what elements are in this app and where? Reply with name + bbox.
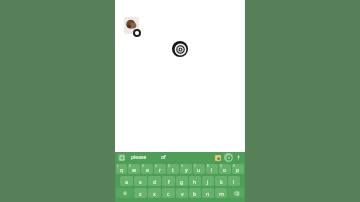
staticText: w: [132, 166, 137, 173]
button[interactable]: v: [176, 188, 188, 198]
button[interactable]: a: [120, 176, 133, 186]
staticText: g: [180, 178, 184, 185]
staticText: m: [219, 190, 224, 197]
button[interactable]: t: [167, 164, 179, 174]
button[interactable]: q: [116, 164, 127, 174]
button[interactable]: Gboard tools: [118, 154, 125, 161]
staticText: 0: [233, 164, 235, 168]
button[interactable]: w: [128, 164, 140, 174]
staticText: y: [185, 166, 188, 173]
button[interactable]: Add attachment: [120, 185, 133, 198]
staticText: 2: [129, 164, 131, 168]
button[interactable]: g: [176, 176, 188, 186]
staticText: of: [161, 154, 166, 161]
button[interactable]: Send: [227, 185, 240, 198]
button[interactable]: z: [134, 188, 147, 198]
button[interactable]: Suggest fun activities: [187, 159, 245, 180]
staticText: Make me a picture: [141, 188, 183, 195]
button[interactable]: Voice input: [235, 154, 242, 161]
button[interactable]: r: [154, 164, 166, 174]
button[interactable]: l: [228, 176, 240, 186]
button[interactable]: please: [131, 154, 147, 161]
staticText: j: [207, 178, 209, 185]
staticText: please: [131, 154, 147, 161]
button[interactable]: e: [141, 164, 153, 174]
staticText: u: [197, 166, 201, 173]
button[interactable]: n: [202, 188, 214, 198]
button[interactable]: j: [202, 176, 214, 186]
button[interactable]: m: [215, 188, 227, 198]
button[interactable]: Attached image: [124, 17, 141, 37]
staticText: 1: [117, 164, 119, 168]
staticText: q: [120, 166, 124, 173]
button[interactable]: y: [180, 164, 192, 174]
button[interactable]: i: [206, 164, 218, 174]
staticText: 4: [155, 164, 157, 168]
staticText: f: [168, 178, 170, 185]
staticText: t: [172, 166, 174, 173]
button[interactable]: Shift: [116, 188, 133, 198]
staticText: Suggest fun activities: [191, 162, 237, 168]
staticText: n: [206, 190, 210, 197]
button[interactable]: Write a text: [121, 159, 183, 180]
staticText: to help me make friends: [191, 169, 237, 174]
button[interactable]: s: [134, 176, 147, 186]
staticText: p: [236, 166, 240, 173]
staticText: d: [153, 178, 157, 185]
staticText: Write a text: [125, 162, 150, 168]
staticText: 9: [220, 164, 222, 168]
button[interactable]: Gemini key: [224, 153, 233, 162]
staticText: inviting my neighbors to a barbecue: [125, 169, 179, 174]
staticText: a: [125, 178, 128, 185]
staticText: 3: [142, 164, 144, 168]
button[interactable]: c: [162, 188, 175, 198]
button[interactable]: d: [148, 176, 161, 186]
other: Generating: [172, 41, 188, 57]
staticText: 5: [168, 164, 170, 168]
staticText: k: [220, 178, 223, 185]
staticText: s: [139, 178, 142, 185]
staticText: v: [181, 190, 184, 197]
button[interactable]: of: [161, 154, 166, 161]
staticText: l: [233, 178, 235, 185]
staticText: c: [167, 190, 170, 197]
button[interactable]: h: [189, 176, 201, 186]
button[interactable]: Stickers: [214, 154, 221, 161]
staticText: e: [146, 166, 149, 173]
button[interactable]: k: [215, 176, 227, 186]
staticText: o: [223, 166, 227, 173]
button[interactable]: o: [219, 164, 231, 174]
staticText: 7: [194, 164, 196, 168]
button[interactable]: u: [193, 164, 205, 174]
button[interactable]: Backspace: [228, 188, 244, 198]
staticText: 8: [207, 164, 209, 168]
staticText: b: [193, 190, 197, 197]
staticText: r: [159, 166, 162, 173]
staticText: 6: [181, 164, 183, 168]
staticText: i: [211, 166, 213, 173]
button[interactable]: b: [189, 188, 201, 198]
button[interactable]: p: [232, 164, 244, 174]
staticText: h: [193, 178, 197, 185]
staticText: x: [153, 190, 156, 197]
button[interactable]: x: [148, 188, 161, 198]
staticText: z: [139, 190, 142, 197]
button[interactable]: Make me a picture: [136, 185, 224, 198]
button[interactable]: f: [162, 176, 175, 186]
